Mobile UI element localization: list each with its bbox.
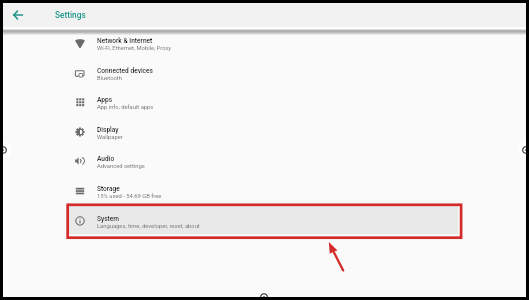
staticText: Connected devices — [97, 67, 153, 75]
staticText: Audio — [97, 155, 115, 163]
button[interactable]: Display — [3, 122, 526, 152]
staticText: Network & Internet — [97, 37, 153, 45]
staticText: Settings — [55, 10, 86, 20]
staticText: Storage — [97, 185, 120, 193]
button[interactable]: Apps — [3, 92, 526, 122]
button[interactable]: Back — [10, 7, 26, 23]
button[interactable]: Next — [516, 140, 529, 160]
button[interactable]: Audio — [3, 151, 526, 181]
button[interactable]: Storage — [3, 181, 526, 211]
staticText: Display — [97, 126, 119, 134]
button[interactable]: Up — [254, 287, 274, 300]
staticText: System — [97, 215, 120, 223]
staticText: Wallpaper — [97, 134, 123, 141]
staticText: 15% used - 54.69 GB free — [97, 193, 162, 200]
button[interactable]: Previous — [0, 140, 13, 160]
button[interactable]: Network & Internet — [3, 33, 526, 63]
staticText: Apps — [97, 96, 113, 104]
staticText: Wi-Fi, Ethernet, Mobile, Proxy — [97, 45, 172, 52]
staticText: Languages, time, developer, reset, about — [97, 223, 200, 230]
button[interactable]: System — [3, 211, 526, 241]
button[interactable]: Connected devices — [3, 63, 526, 93]
staticText: Advanced settings — [97, 163, 145, 170]
staticText: App info, default apps — [97, 104, 154, 111]
staticText: Bluetooth — [97, 75, 122, 82]
